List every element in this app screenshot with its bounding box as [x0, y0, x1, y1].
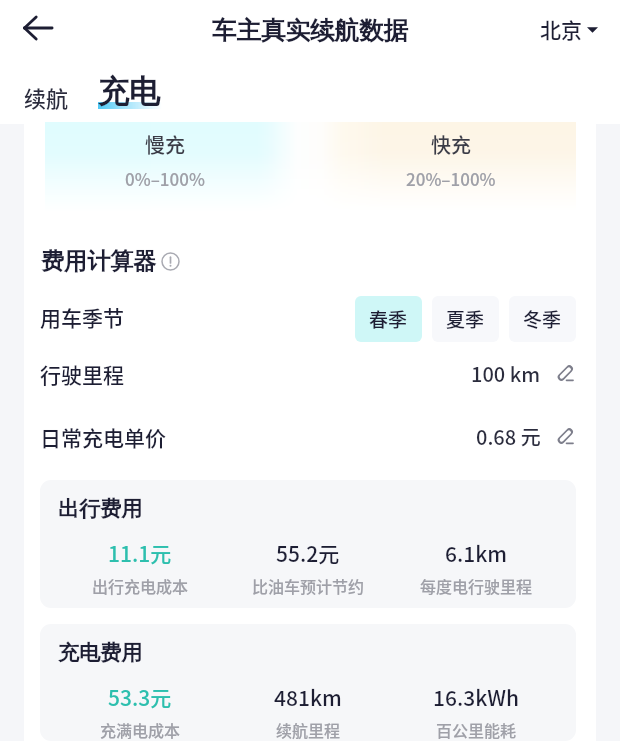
staticText: 费用计算器 [41, 247, 156, 276]
staticText: 快充 [431, 130, 471, 159]
staticText: 出行费用 [58, 496, 142, 522]
button[interactable]: 春季 [355, 296, 422, 342]
staticText: 0.68 元 [476, 422, 541, 451]
button[interactable]: 冬季 [509, 296, 576, 342]
staticText: 11.1元 [108, 538, 172, 568]
staticText: 比油车预计节约 [252, 574, 365, 597]
staticText: 充电费用 [58, 640, 142, 666]
staticText: 行驶里程 [40, 359, 124, 389]
staticText: 夏季 [446, 305, 485, 333]
staticText: 北京 [540, 14, 582, 44]
staticText: 每度电行驶里程 [420, 574, 533, 597]
staticText: 0%–100% [125, 166, 205, 191]
staticText: 出行充电成本 [92, 574, 189, 597]
button[interactable]: 夏季 [432, 296, 499, 342]
staticText: 20%–100% [406, 166, 496, 191]
staticText: 16.3kWh [433, 682, 520, 712]
staticText: 续航 [24, 81, 69, 113]
staticText: 慢充 [145, 130, 185, 159]
staticText: 冬季 [523, 305, 562, 333]
other: Edit [556, 364, 575, 383]
staticText: 百公里能耗 [436, 718, 517, 741]
staticText: 充电 [98, 72, 160, 111]
staticText: 春季 [369, 305, 408, 333]
staticText: 481km [274, 682, 342, 712]
button[interactable]: 充电 [98, 56, 162, 111]
staticText: 6.1km [445, 538, 508, 568]
button[interactable]: 行驶里程 [40, 342, 575, 405]
staticText: 日常充电单价 [40, 422, 166, 452]
staticText: 用车季节 [40, 302, 124, 332]
staticText: 续航里程 [276, 718, 341, 741]
button[interactable]: 日常充电单价 [40, 405, 575, 468]
staticText: 充满电成本 [100, 718, 181, 741]
button[interactable]: Back [14, 4, 62, 52]
other: Edit [556, 427, 575, 446]
button[interactable]: 北京 [540, 14, 598, 44]
button[interactable]: 续航 [24, 56, 69, 113]
staticText: 车主真实续航数据 [212, 15, 408, 46]
staticText: 53.3元 [108, 682, 172, 712]
staticText: 100 km [471, 359, 541, 388]
staticText: 55.2元 [276, 538, 340, 568]
